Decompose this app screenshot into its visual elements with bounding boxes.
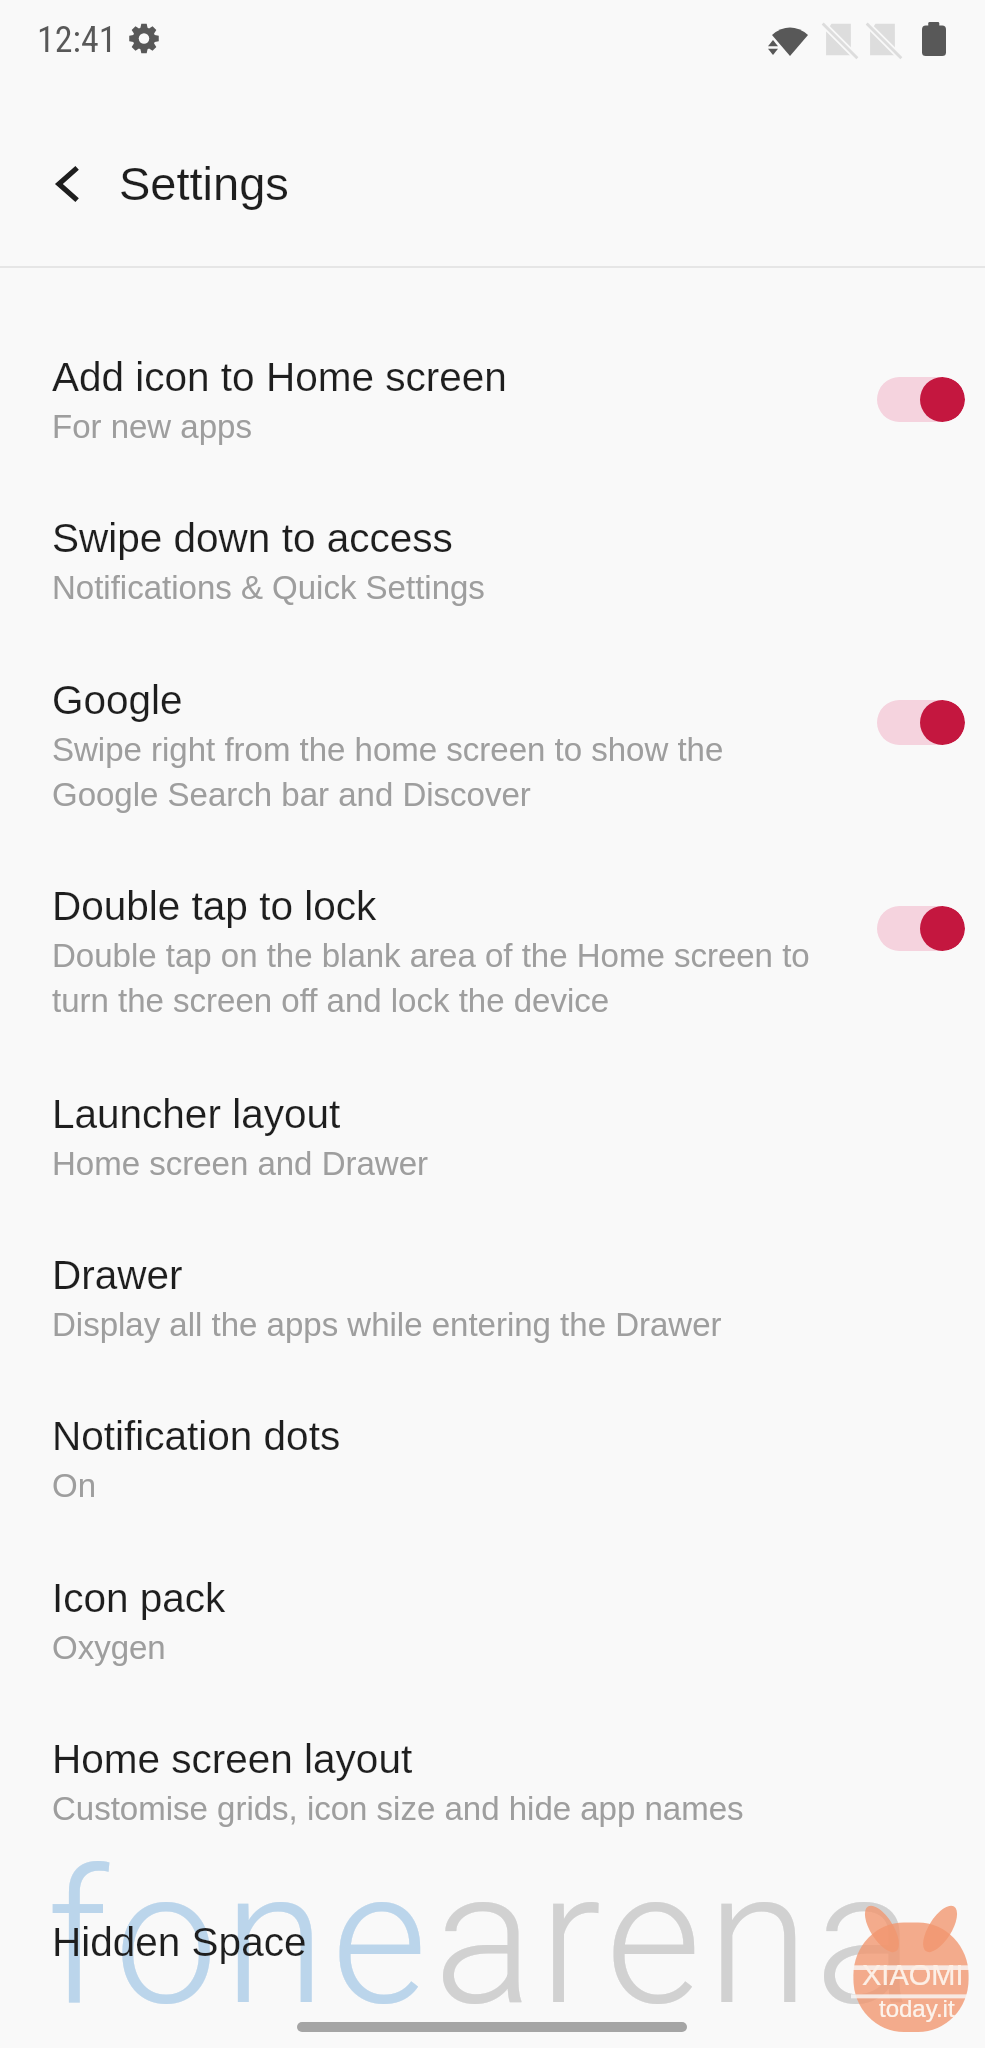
button[interactable]: Swipe down to access <box>0 493 985 631</box>
staticText: Drawer <box>52 1252 183 1297</box>
staticText: Double tap to lock <box>52 883 377 928</box>
button[interactable]: Hidden Space <box>0 1897 985 1988</box>
staticText: Google <box>52 677 183 722</box>
staticText: Add icon to Home screen <box>52 354 507 399</box>
button[interactable]: Toggle <box>877 700 965 745</box>
button[interactable]: Toggle <box>877 906 965 951</box>
staticText: arena <box>434 1830 921 2047</box>
staticText: On <box>52 1467 97 1504</box>
staticText: Display all the apps while entering the … <box>52 1306 722 1343</box>
button[interactable]: Home screen layout <box>0 1714 985 1852</box>
button[interactable]: Google <box>0 655 985 838</box>
button[interactable]: Icon pack <box>0 1553 985 1691</box>
button[interactable]: Notification dots <box>0 1391 985 1529</box>
staticText: Notification dots <box>52 1413 341 1458</box>
staticText: 12:41 <box>37 19 117 61</box>
staticText: Oxygen <box>52 1629 166 1666</box>
staticText: XIAOMI <box>862 1959 964 1991</box>
button[interactable]: Double tap to lock <box>0 861 985 1044</box>
button[interactable]: Launcher layout <box>0 1069 985 1207</box>
button[interactable]: Drawer <box>0 1230 985 1368</box>
staticText: Home screen and Drawer <box>52 1145 428 1182</box>
staticText: For new apps <box>52 408 252 445</box>
staticText: today.it <box>879 1995 955 2022</box>
button[interactable]: Add icon to Home screen <box>0 332 985 470</box>
staticText: Customise grids, icon size and hide app … <box>52 1790 744 1827</box>
staticText: fone <box>47 1830 434 2047</box>
button[interactable]: Toggle <box>877 377 965 422</box>
staticText: Home screen layout <box>52 1736 413 1781</box>
staticText: Double tap on the blank area of the Home… <box>52 937 810 974</box>
staticText: Launcher layout <box>52 1091 341 1136</box>
staticText: Google Search bar and Discover <box>52 776 531 813</box>
staticText: Settings <box>119 157 289 210</box>
staticText: Swipe down to access <box>52 515 453 560</box>
staticText: Hidden Space <box>52 1919 307 1964</box>
staticText: turn the screen off and lock the device <box>52 982 610 1019</box>
staticText: Swipe right from the home screen to show… <box>52 731 724 768</box>
button[interactable]: Back <box>36 152 100 216</box>
staticText: Icon pack <box>52 1575 226 1620</box>
staticText: Notifications & Quick Settings <box>52 569 485 606</box>
